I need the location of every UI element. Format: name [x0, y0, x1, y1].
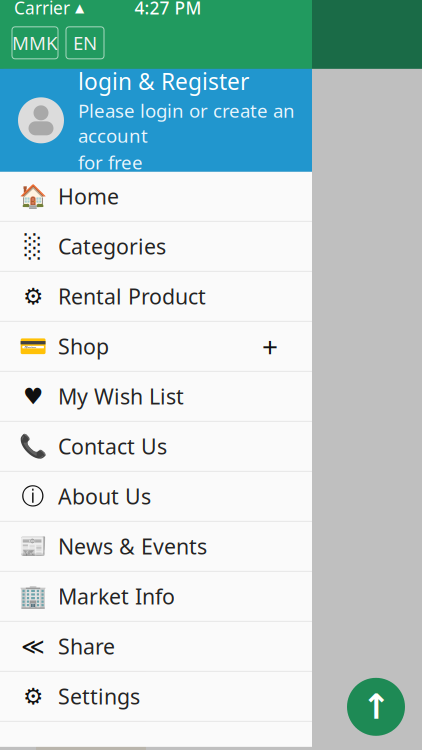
staticText: ost Liked — [2, 579, 92, 607]
button[interactable]: 💳 — [0, 322, 312, 372]
staticText: 📞 — [19, 433, 47, 459]
button[interactable]: ≪ — [0, 622, 312, 672]
button[interactable]: EN — [66, 27, 104, 59]
staticText: News & Events — [58, 532, 207, 560]
staticText: + — [262, 328, 278, 365]
staticText: Shop — [58, 332, 109, 360]
staticText: Categories — [58, 232, 166, 260]
button[interactable]: 📰 — [0, 522, 312, 572]
staticText: Share — [58, 632, 115, 660]
button[interactable]: ⚙ — [0, 672, 312, 722]
button[interactable]: 🏠 — [0, 172, 312, 222]
staticText: ⚙ — [23, 683, 43, 709]
staticText: login & Register — [78, 66, 249, 96]
button[interactable]: ░ — [0, 222, 312, 272]
staticText: 📰 — [19, 533, 47, 559]
staticText: ≪ — [21, 633, 45, 659]
staticText: o Cart — [6, 247, 55, 270]
button[interactable]: ⚙ — [0, 272, 312, 322]
staticText: ♡ — [76, 214, 96, 240]
staticText: ⓘ — [21, 482, 44, 510]
staticText: Bottle - 1 litre) — [2, 185, 116, 208]
button[interactable]: login & Register — [0, 69, 312, 172]
staticText: 4:27 PM — [134, 0, 201, 19]
button[interactable]: ♥ — [0, 372, 312, 422]
staticText: MMK — [12, 30, 58, 55]
button[interactable]: Scroll to top — [347, 678, 405, 736]
button[interactable]: MMK — [12, 27, 58, 59]
staticText: Contact Us — [58, 432, 167, 460]
staticText: About Us — [58, 482, 151, 510]
staticText: ♥ — [23, 383, 43, 409]
staticText: Settings — [58, 682, 140, 710]
staticText: Market Info — [58, 582, 175, 610]
staticText: ⚙ — [23, 283, 43, 309]
staticText: Home — [58, 182, 119, 210]
button[interactable]: ⓘ — [0, 472, 312, 522]
staticText: 🏠 — [19, 183, 47, 209]
staticText: EN — [73, 30, 97, 55]
staticText: Please login or create an account — [78, 98, 295, 148]
staticText: 💳 — [19, 333, 47, 359]
staticText: for free — [78, 150, 143, 175]
staticText: My Wish List — [58, 382, 184, 410]
staticText: ░ — [24, 233, 41, 259]
staticText: ▲ — [75, 1, 84, 15]
button[interactable]: 📞 — [0, 422, 312, 472]
staticText: Carrier — [14, 0, 70, 19]
button[interactable]: 🏢 — [0, 572, 312, 622]
staticText: 🏢 — [19, 583, 47, 609]
staticText: Rental Product — [58, 282, 206, 310]
staticText: ↑ — [361, 687, 390, 726]
